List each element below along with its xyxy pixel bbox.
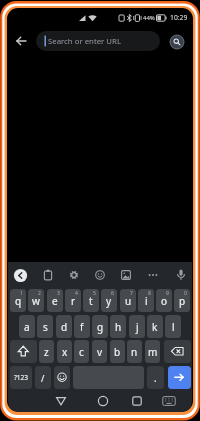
button[interactable]: t [83,289,99,312]
button[interactable]: o [156,289,172,312]
button[interactable]: Search or enter URL [36,31,160,51]
staticText: 3 [57,290,60,297]
button[interactable]: r [65,289,81,312]
staticText: s [43,320,48,334]
staticText: f [80,320,84,334]
staticText: p [179,294,186,308]
button[interactable] [164,340,191,363]
staticText: m [148,345,158,359]
button[interactable]: x [57,340,72,363]
button[interactable] [170,35,184,49]
button[interactable]: i [138,289,154,312]
staticText: e [52,294,58,308]
button[interactable] [13,268,28,283]
staticText: i [145,294,148,308]
button[interactable] [92,390,114,411]
button[interactable] [64,265,84,285]
button[interactable]: j [129,315,145,338]
staticText: 8 [148,290,151,297]
button[interactable] [158,390,180,411]
button[interactable]: q [10,289,26,312]
staticText: . [154,371,157,385]
staticText: 0 [184,290,187,297]
button[interactable]: . [147,366,164,389]
button[interactable]: y [101,289,117,312]
button[interactable]: c [74,340,89,363]
staticText: k [152,320,158,334]
button[interactable] [171,265,191,285]
staticText: v [97,345,103,359]
button[interactable] [168,366,191,389]
button[interactable] [143,265,163,285]
button[interactable]: e [47,289,63,312]
button[interactable]: w [28,289,44,312]
button[interactable]: / [35,366,51,389]
staticText: ?123 [14,373,28,382]
staticText: x [62,345,68,359]
staticText: 44% [143,14,155,22]
staticText: 6 [111,290,114,297]
staticText: t [89,294,93,308]
staticText: o [161,294,168,308]
button[interactable]: k [147,315,163,338]
staticText: b [114,345,121,359]
staticText: u [125,294,132,308]
staticText: 10:29 [170,13,188,22]
staticText: l [172,320,175,334]
button[interactable]: b [110,340,125,363]
button[interactable]: s [37,315,53,338]
staticText: 1 [20,290,23,297]
staticText: j [136,320,139,334]
button[interactable] [38,265,58,285]
staticText: a [24,320,30,334]
staticText: 9 [166,290,169,297]
button[interactable] [11,30,31,50]
button[interactable]: z [39,340,54,363]
staticText: y [106,294,112,308]
button[interactable]: a [19,315,35,338]
staticText: r [71,294,76,308]
button[interactable]: v [92,340,107,363]
button[interactable] [10,340,37,363]
staticText: c [79,345,84,359]
staticText: q [15,294,22,308]
button[interactable]: h [110,315,126,338]
staticText: h [115,320,122,334]
button[interactable]: p [174,289,190,312]
staticText: 4 [75,290,78,297]
staticText: g [97,320,104,334]
button[interactable] [50,390,72,411]
button[interactable] [90,265,110,285]
staticText: d [61,320,68,334]
button[interactable]: n [127,340,142,363]
button[interactable]: ?123 [10,366,32,389]
staticText: w [32,294,40,308]
staticText: 5 [93,290,96,297]
staticText: z [44,345,49,359]
button[interactable]: u [120,289,136,312]
button[interactable]: m [145,340,160,363]
staticText: n [131,345,138,359]
button[interactable]: g [92,315,108,338]
staticText: 7 [130,290,133,297]
button[interactable]: d [56,315,72,338]
button[interactable] [54,366,70,389]
button[interactable] [116,265,136,285]
button[interactable]: l [165,315,181,338]
staticText: 2 [38,290,41,297]
button[interactable] [126,390,148,411]
button[interactable]: f [74,315,90,338]
staticText: / [41,372,45,384]
staticText: Search or enter URL [48,36,121,47]
